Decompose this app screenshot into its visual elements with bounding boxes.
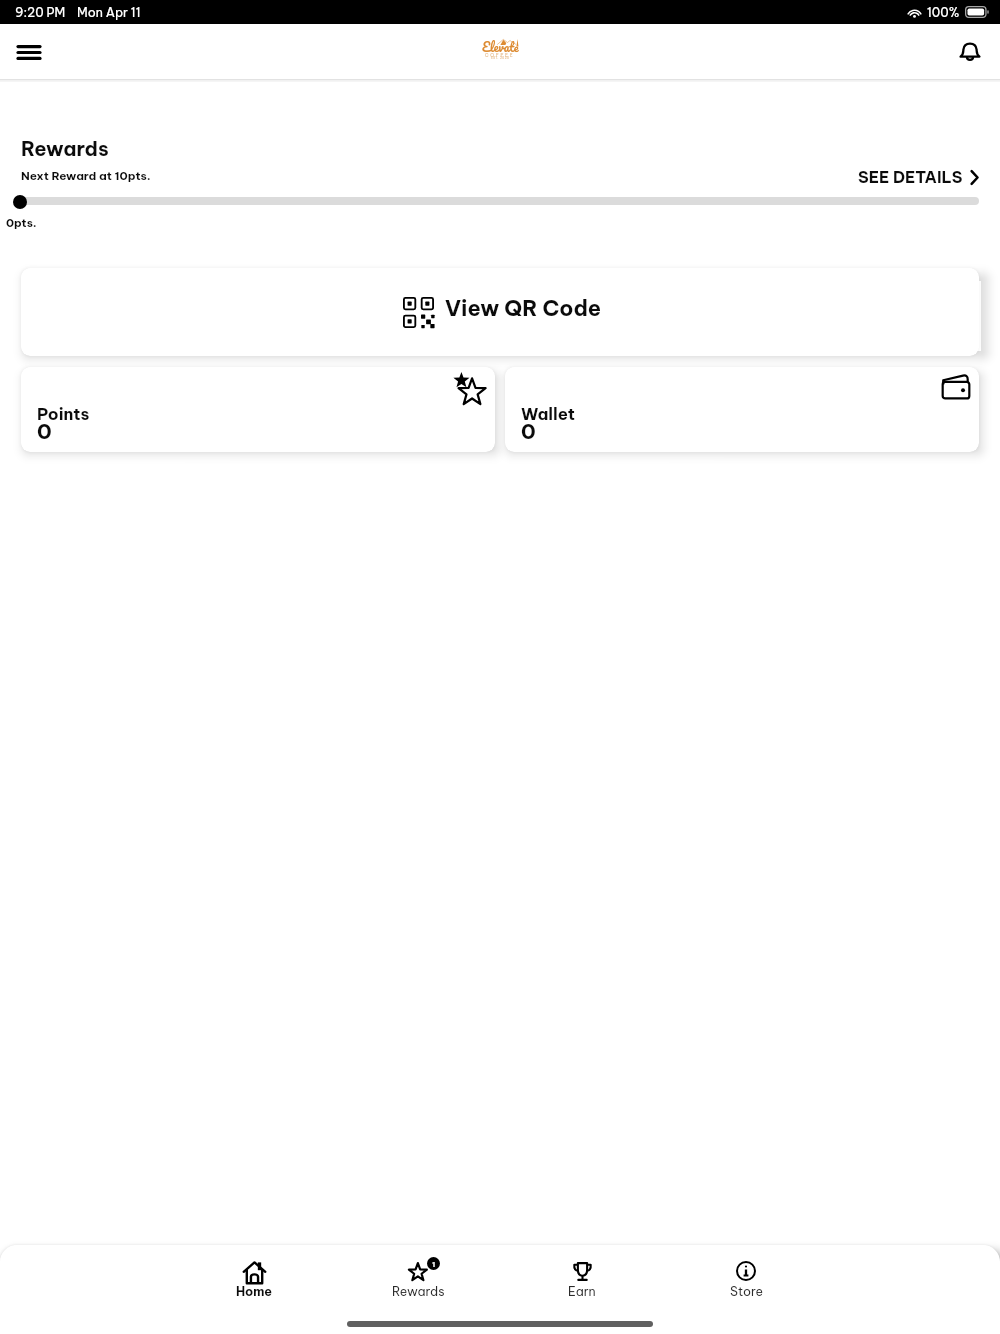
staticText: 9:20 PM [15,4,66,20]
button[interactable]: View QR Code [21,268,979,356]
button[interactable]: Home [172,1245,336,1305]
staticText: Rewards [392,1283,445,1299]
staticText: 1 [432,1259,436,1269]
staticText: View QR Code [445,294,602,321]
button[interactable]: Earn [500,1245,664,1305]
button[interactable]: Points [21,367,495,452]
button[interactable]: Wallet [505,367,979,452]
staticText: 100% [927,4,960,20]
staticText: Points [37,403,90,424]
staticText: COFFEE [485,52,515,58]
button[interactable]: SEE DETAILS [855,164,982,190]
staticText: Elevate [482,37,519,58]
button[interactable]: Open menu [5,28,53,76]
staticText: 0pts. [6,215,37,230]
button[interactable]: Store [664,1245,828,1305]
staticText: Home [236,1283,273,1299]
button[interactable]: 1 [336,1245,500,1305]
staticText: EST. 2020 [491,56,510,60]
button[interactable]: Notifications [946,28,994,76]
staticText: Rewards [21,136,109,161]
staticText: Earn [568,1283,596,1299]
staticText: SEE DETAILS [858,167,963,187]
staticText: 0 [37,418,52,445]
staticText: Wallet [521,403,576,424]
staticText: Next Reward at 10pts. [21,168,151,183]
staticText: 0 [521,418,536,445]
staticText: Store [730,1283,763,1299]
staticText: Mon Apr 11 [77,4,141,20]
